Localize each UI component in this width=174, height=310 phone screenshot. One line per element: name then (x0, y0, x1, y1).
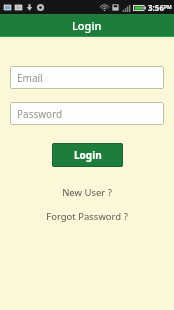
button[interactable]: Forgot Password ? (40, 208, 134, 225)
staticText: Forgot Password ? (46, 210, 128, 223)
staticText: New User ? (62, 186, 112, 199)
button[interactable]: Login (52, 143, 123, 167)
staticText: 3:56 (148, 2, 164, 13)
button[interactable]: Email (10, 66, 164, 89)
staticText: Email (17, 71, 43, 85)
staticText: Password (17, 107, 63, 121)
staticText: Login (74, 148, 102, 162)
staticText: Login (72, 18, 102, 33)
button[interactable]: Password (10, 102, 164, 125)
button[interactable]: New User ? (56, 184, 118, 201)
staticText: PM (164, 4, 172, 11)
